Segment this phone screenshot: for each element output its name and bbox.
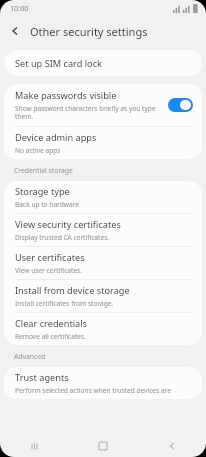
button[interactable]: Install from device storage — [4, 280, 202, 312]
staticText: Other security settings — [30, 24, 148, 39]
staticText: View security certificates — [15, 218, 121, 231]
button[interactable]: Recents — [0, 435, 68, 457]
staticText: 10:00 — [10, 3, 29, 13]
button[interactable]: Home — [68, 435, 137, 457]
button[interactable]: Set up SIM card lock — [4, 50, 202, 76]
staticText: Storage type — [15, 185, 70, 198]
staticText: Display trusted CA certificates. — [15, 233, 110, 242]
staticText: No active apps — [15, 146, 61, 155]
staticText: Advanced — [14, 352, 46, 361]
staticText: Credential storage — [14, 166, 73, 175]
button[interactable]: Storage type — [4, 181, 202, 213]
staticText: Set up SIM card lock — [15, 57, 102, 70]
staticText: Install certificates from storage. — [15, 299, 114, 308]
staticText: View user certificates. — [15, 266, 83, 275]
staticText: Perform selected actions when trusted de… — [15, 386, 171, 395]
staticText: Trust agents — [15, 371, 69, 384]
staticText: Back up to hardware — [15, 200, 79, 209]
staticText: Remove all certificates. — [15, 332, 86, 341]
button[interactable]: Toggle make passwords visible — [168, 98, 193, 112]
button[interactable]: Back — [137, 435, 206, 457]
button[interactable]: Device admin apps — [4, 127, 202, 159]
button[interactable]: Trust agents — [4, 367, 202, 399]
staticText: Show password characters briefly as you … — [15, 104, 162, 121]
button[interactable]: User certificates — [4, 247, 202, 279]
staticText: User certificates — [15, 251, 85, 264]
staticText: Clear credentials — [15, 317, 88, 330]
staticText: Device admin apps — [15, 131, 97, 144]
button[interactable]: Make passwords visible — [4, 84, 202, 126]
button[interactable]: Clear credentials — [4, 313, 202, 345]
button[interactable]: Back — [0, 16, 30, 46]
staticText: Install from device storage — [15, 284, 130, 297]
staticText: Make passwords visible — [15, 89, 117, 102]
button[interactable]: View security certificates — [4, 214, 202, 246]
